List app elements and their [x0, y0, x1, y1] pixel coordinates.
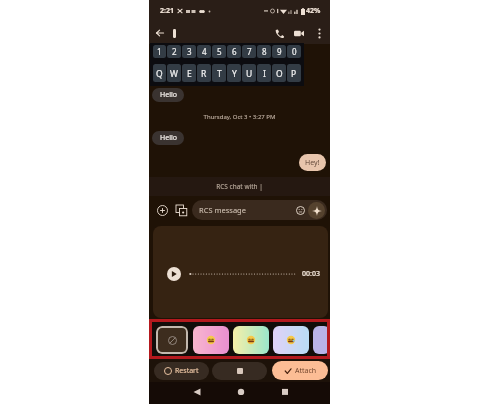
- staticText: P: [291, 68, 297, 80]
- staticText: Attach: [295, 366, 317, 376]
- button[interactable]: 6: [227, 45, 241, 58]
- staticText: Hello: [160, 90, 177, 100]
- staticText: 0: [292, 46, 297, 57]
- button[interactable]: Magic compose: [308, 202, 325, 219]
- staticText: 1: [157, 46, 162, 57]
- staticText: RCS chat with |: [216, 182, 263, 191]
- button[interactable]: Back: [151, 24, 169, 42]
- button[interactable]: E: [182, 64, 196, 82]
- button[interactable]: Add: [155, 203, 170, 218]
- button[interactable]: 7: [242, 45, 256, 58]
- staticText: Hello: [160, 133, 177, 143]
- button[interactable]: Hello: [152, 131, 184, 145]
- staticText: R: [201, 68, 207, 80]
- button[interactable]: 3: [182, 45, 196, 58]
- button[interactable]: O: [272, 64, 286, 82]
- staticText: E: [187, 68, 192, 80]
- staticText: 4: [202, 46, 207, 57]
- button[interactable]: 8: [257, 45, 271, 58]
- button[interactable]: T: [212, 64, 226, 82]
- staticText: U: [246, 68, 253, 80]
- staticText: Y: [232, 68, 237, 80]
- staticText: T: [217, 68, 222, 80]
- staticText: Restart: [175, 366, 199, 376]
- staticText: 5: [217, 46, 222, 57]
- button[interactable]: Hey!: [299, 154, 326, 171]
- staticText: 6: [232, 46, 237, 57]
- staticText: 42%: [306, 6, 321, 16]
- staticText: RCS message: [199, 205, 246, 215]
- button[interactable]: More options: [310, 24, 328, 42]
- button[interactable]: Voice filter: [313, 326, 330, 354]
- button[interactable]: RCS message: [192, 200, 327, 220]
- button[interactable]: 9: [272, 45, 286, 58]
- button[interactable]: 4: [197, 45, 211, 58]
- staticText: 8: [262, 46, 267, 57]
- staticText: 9: [277, 46, 282, 57]
- staticText: 2:21: [160, 6, 174, 16]
- button[interactable]: Play: [167, 267, 181, 281]
- button[interactable]: R: [197, 64, 211, 82]
- button[interactable]: 1: [153, 45, 166, 58]
- staticText: O: [276, 68, 283, 80]
- button[interactable]: P: [287, 64, 301, 82]
- button[interactable]: Video call: [290, 24, 308, 42]
- button[interactable]: Q: [153, 64, 166, 82]
- button[interactable]: Restart: [154, 362, 209, 380]
- staticText: Q: [156, 68, 163, 80]
- button[interactable]: U: [242, 64, 256, 82]
- button[interactable]: I: [257, 64, 271, 82]
- button[interactable]: 5: [212, 45, 226, 58]
- button[interactable]: Attach: [272, 361, 328, 380]
- button[interactable]: 2: [167, 45, 181, 58]
- staticText: W: [170, 68, 178, 80]
- staticText: Hey!: [305, 158, 320, 168]
- button[interactable]: Call: [270, 24, 288, 42]
- staticText: 00:03: [302, 269, 320, 279]
- button[interactable]: Hello: [152, 88, 184, 102]
- staticText: Thursday, Oct 3 • 3:27 PM: [149, 113, 330, 121]
- button[interactable]: No filter: [156, 326, 188, 354]
- button[interactable]: Voice filter: [233, 326, 269, 354]
- staticText: 7: [247, 46, 252, 57]
- button[interactable]: W: [167, 64, 181, 82]
- button[interactable]: 0: [287, 45, 301, 58]
- button[interactable]: Gallery: [174, 203, 189, 218]
- button[interactable]: Voice filter: [273, 326, 309, 354]
- staticText: 2: [172, 46, 177, 57]
- button[interactable]: Y: [227, 64, 241, 82]
- staticText: 3: [187, 46, 192, 57]
- staticText: I: [263, 68, 266, 80]
- button[interactable]: Stop: [212, 362, 267, 380]
- button[interactable]: Voice filter: [193, 326, 229, 354]
